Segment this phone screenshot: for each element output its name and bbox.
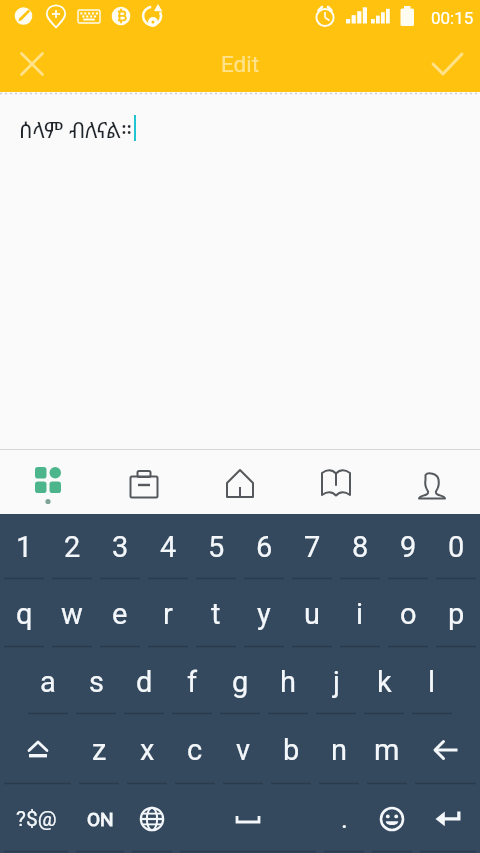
staticText: h — [280, 665, 296, 699]
staticText: Edit — [221, 51, 260, 77]
button[interactable]: Close — [0, 36, 64, 92]
button[interactable]: 9 — [384, 514, 432, 580]
button[interactable]: 0 — [432, 514, 480, 580]
staticText: l — [428, 665, 436, 699]
button[interactable]: Emoji — [368, 785, 416, 853]
button[interactable]: i — [336, 580, 384, 648]
button[interactable]: 8 — [336, 514, 384, 580]
staticText: f — [187, 665, 198, 699]
staticText: c — [187, 733, 203, 767]
staticText: b — [283, 733, 300, 767]
staticText: ሰላም ብለናል። — [19, 114, 133, 144]
staticText: y — [257, 597, 271, 631]
staticText: 6 — [256, 530, 273, 564]
staticText: 5 — [208, 530, 225, 564]
button[interactable]: Done — [416, 36, 480, 92]
button[interactable]: 5 — [192, 514, 240, 580]
button[interactable]: 7 — [288, 514, 336, 580]
button[interactable]: Space — [176, 785, 320, 853]
staticText: ?$@ — [16, 807, 57, 832]
button[interactable]: Library — [288, 450, 384, 514]
button[interactable]: z — [75, 715, 123, 785]
button[interactable]: Enter — [416, 785, 480, 853]
button[interactable]: u — [288, 580, 336, 648]
staticText: s — [89, 665, 104, 699]
staticText: ON — [87, 808, 114, 830]
button[interactable]: y — [240, 580, 288, 648]
staticText: 0 — [448, 530, 465, 564]
staticText: 00:15 — [431, 8, 474, 28]
button[interactable]: d — [120, 648, 168, 715]
staticText: t — [211, 597, 221, 631]
staticText: r — [163, 597, 173, 631]
button[interactable]: ?$@ — [0, 785, 72, 853]
button[interactable]: Shift — [0, 715, 75, 785]
staticText: . — [341, 804, 348, 834]
staticText: 3 — [112, 530, 129, 564]
staticText: 4 — [160, 530, 177, 564]
staticText: k — [377, 665, 392, 699]
button[interactable]: c — [171, 715, 219, 785]
button[interactable]: f — [168, 648, 216, 715]
button[interactable]: q — [0, 580, 48, 648]
staticText: m — [374, 733, 400, 767]
staticText: v — [236, 733, 251, 767]
button[interactable]: p — [432, 580, 480, 648]
button[interactable]: m — [363, 715, 411, 785]
button[interactable]: t — [192, 580, 240, 648]
staticText: 1 — [16, 530, 33, 564]
staticText: i — [356, 597, 364, 631]
staticText: 8 — [352, 530, 369, 564]
button[interactable]: Apps — [0, 450, 96, 514]
staticText: 7 — [304, 530, 321, 564]
staticText: w — [61, 597, 83, 631]
button[interactable]: s — [72, 648, 120, 715]
staticText: p — [448, 597, 465, 631]
button[interactable]: o — [384, 580, 432, 648]
staticText: 9 — [400, 530, 417, 564]
button[interactable]: ON — [72, 785, 128, 853]
button[interactable]: . — [320, 785, 368, 853]
button[interactable]: r — [144, 580, 192, 648]
staticText: g — [232, 665, 249, 699]
button[interactable]: v — [219, 715, 267, 785]
button[interactable]: Backspace — [411, 715, 480, 785]
staticText: 2 — [64, 530, 81, 564]
button[interactable]: 3 — [96, 514, 144, 580]
button[interactable]: g — [216, 648, 264, 715]
button[interactable]: Profile — [384, 450, 480, 514]
button[interactable]: j — [312, 648, 360, 715]
staticText: a — [40, 665, 56, 699]
button[interactable]: 6 — [240, 514, 288, 580]
button[interactable]: n — [315, 715, 363, 785]
button[interactable]: b — [267, 715, 315, 785]
staticText: o — [400, 597, 417, 631]
staticText: d — [136, 665, 153, 699]
staticText: u — [304, 597, 320, 631]
staticText: e — [112, 597, 128, 631]
staticText: q — [16, 597, 33, 631]
button[interactable]: a — [24, 648, 72, 715]
staticText: x — [140, 733, 155, 767]
button[interactable]: e — [96, 580, 144, 648]
button[interactable]: h — [264, 648, 312, 715]
staticText: n — [331, 733, 348, 767]
button[interactable]: 2 — [48, 514, 96, 580]
button[interactable]: Home — [192, 450, 288, 514]
button[interactable]: w — [48, 580, 96, 648]
button[interactable]: Work — [96, 450, 192, 514]
staticText: j — [333, 665, 340, 699]
button[interactable]: k — [360, 648, 408, 715]
staticText: z — [92, 733, 107, 767]
button[interactable]: 1 — [0, 514, 48, 580]
button[interactable]: 4 — [144, 514, 192, 580]
button[interactable]: Change language — [128, 785, 176, 853]
button[interactable]: x — [123, 715, 171, 785]
button[interactable]: l — [408, 648, 456, 715]
